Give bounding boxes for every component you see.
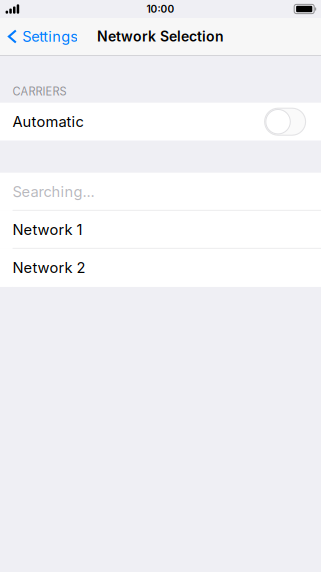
button[interactable]: Network 1 — [0, 211, 321, 249]
staticText: 10:00 — [146, 3, 174, 15]
staticText: CARRIERS — [13, 85, 67, 98]
staticText: Searching... — [13, 183, 95, 200]
staticText: Network Selection — [97, 28, 224, 45]
button[interactable]: Automatic — [0, 103, 321, 141]
button[interactable]: Back to Settings — [0, 23, 84, 50]
staticText: Automatic — [13, 113, 84, 130]
staticText: Network 2 — [13, 259, 86, 276]
staticText: Settings — [22, 28, 78, 45]
staticText: Network 1 — [13, 221, 83, 238]
button[interactable]: Searching... — [0, 173, 321, 211]
button[interactable]: Network 2 — [0, 249, 321, 287]
